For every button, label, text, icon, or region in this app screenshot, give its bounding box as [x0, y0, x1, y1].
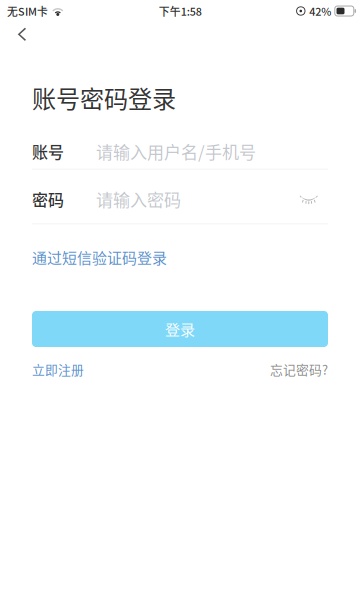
staticText: 登录 [165, 318, 195, 340]
button[interactable]: 登录 [32, 311, 328, 347]
button[interactable]: 立即注册 [32, 360, 84, 378]
staticText: 立即注册 [32, 360, 84, 378]
button[interactable]: Show password [292, 192, 328, 206]
button[interactable]: 忘记密码? [270, 360, 328, 378]
staticText: 请输入密码 [96, 187, 181, 211]
button[interactable]: 通过短信验证码登录 [0, 245, 175, 269]
staticText: 密码 [32, 187, 64, 211]
staticText: 请输入用户名/手机号 [96, 139, 256, 164]
staticText: 42% [309, 3, 331, 19]
staticText: 通过短信验证码登录 [32, 246, 167, 268]
staticText: 账号密码登录 [32, 80, 176, 115]
staticText: 无SIM卡 [7, 3, 48, 19]
staticText: 账号 [32, 140, 64, 163]
staticText: 下午1:58 [159, 3, 202, 19]
staticText: 忘记密码? [270, 360, 328, 378]
button[interactable]: Back [0, 22, 44, 50]
